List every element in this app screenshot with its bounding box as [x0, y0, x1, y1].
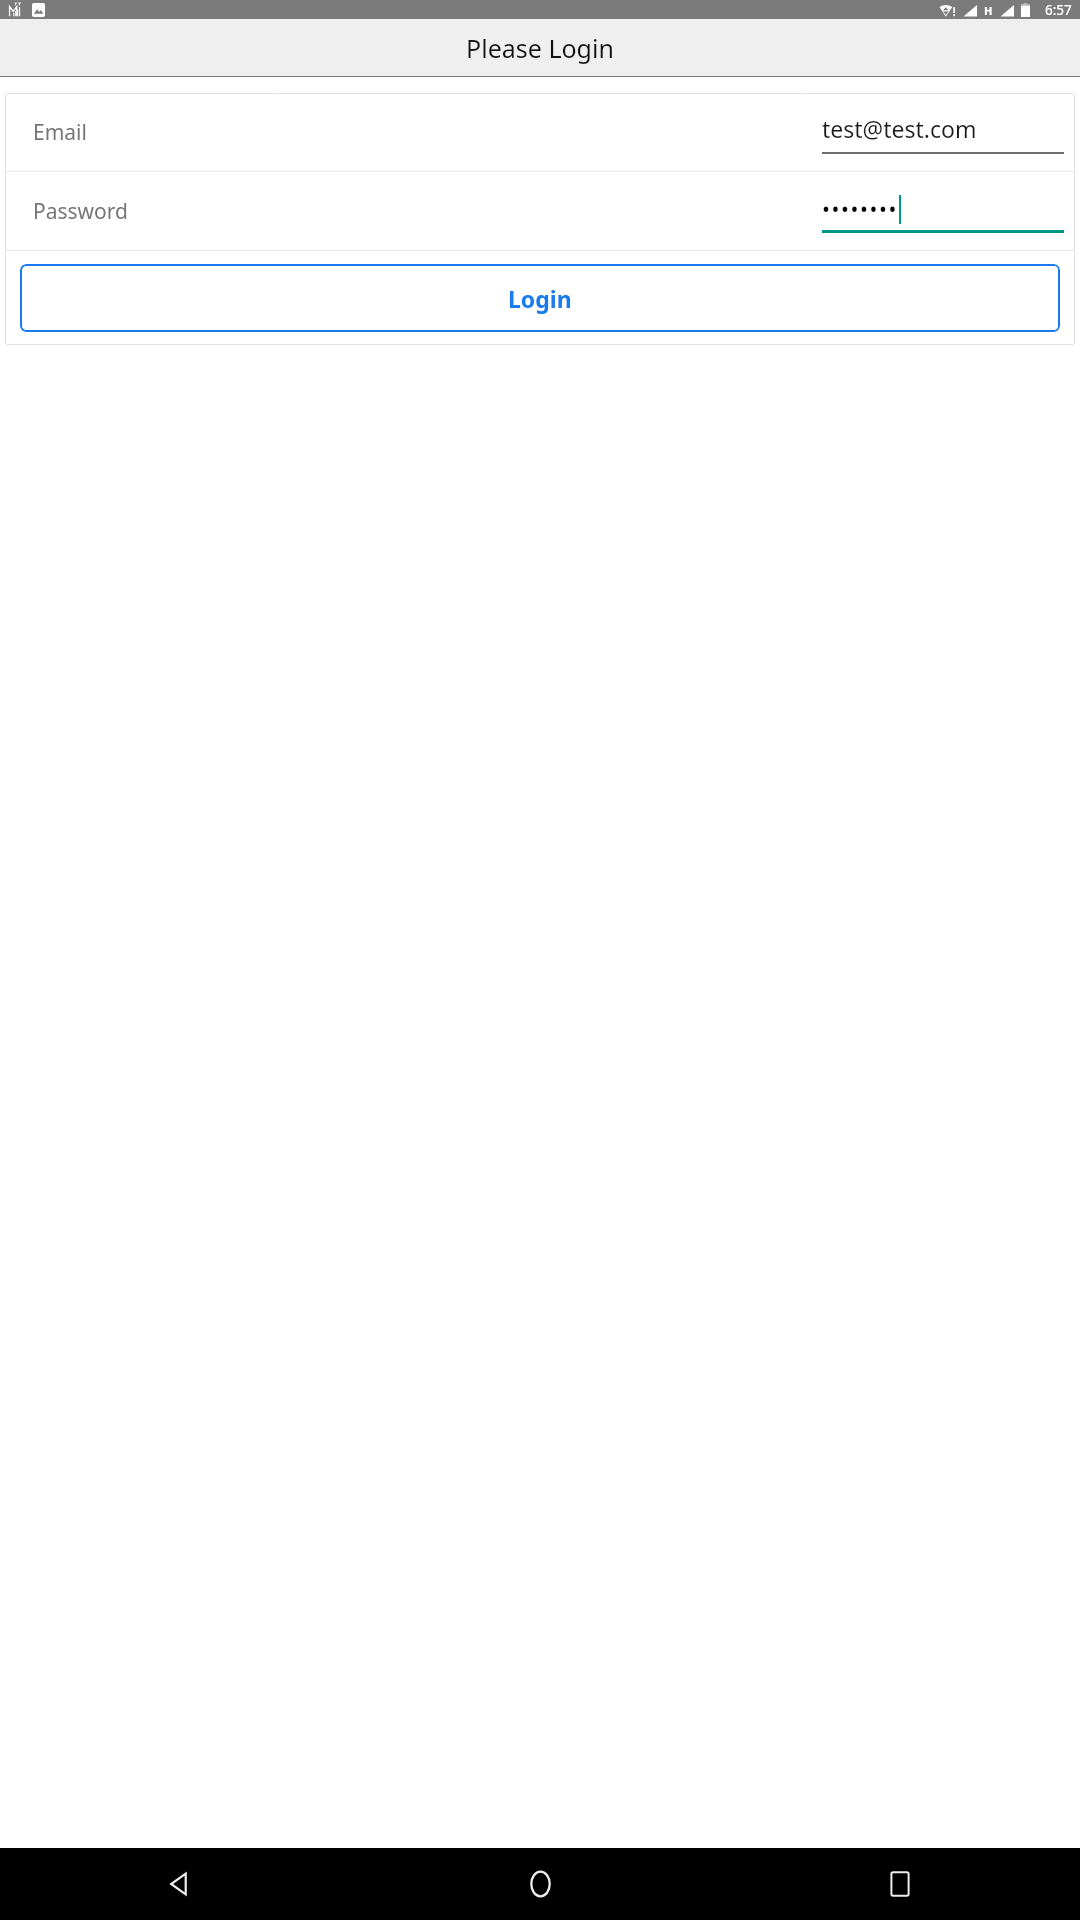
button[interactable]: Email [5, 93, 1075, 171]
staticText: 6:57 [1045, 1, 1072, 19]
staticText: •••••••• [822, 195, 898, 224]
button[interactable]: Recent apps [720, 1848, 1080, 1920]
staticText: Email [33, 118, 87, 147]
staticText: H [984, 3, 993, 18]
button[interactable]: Password [5, 172, 1075, 250]
staticText: Login [508, 283, 572, 314]
staticText: test@test.com [822, 113, 977, 144]
staticText: Please Login [466, 31, 614, 65]
staticText: Password [33, 197, 128, 226]
button[interactable]: Login [20, 264, 1060, 332]
button[interactable]: Home [360, 1848, 720, 1920]
button[interactable]: Back [0, 1848, 360, 1920]
